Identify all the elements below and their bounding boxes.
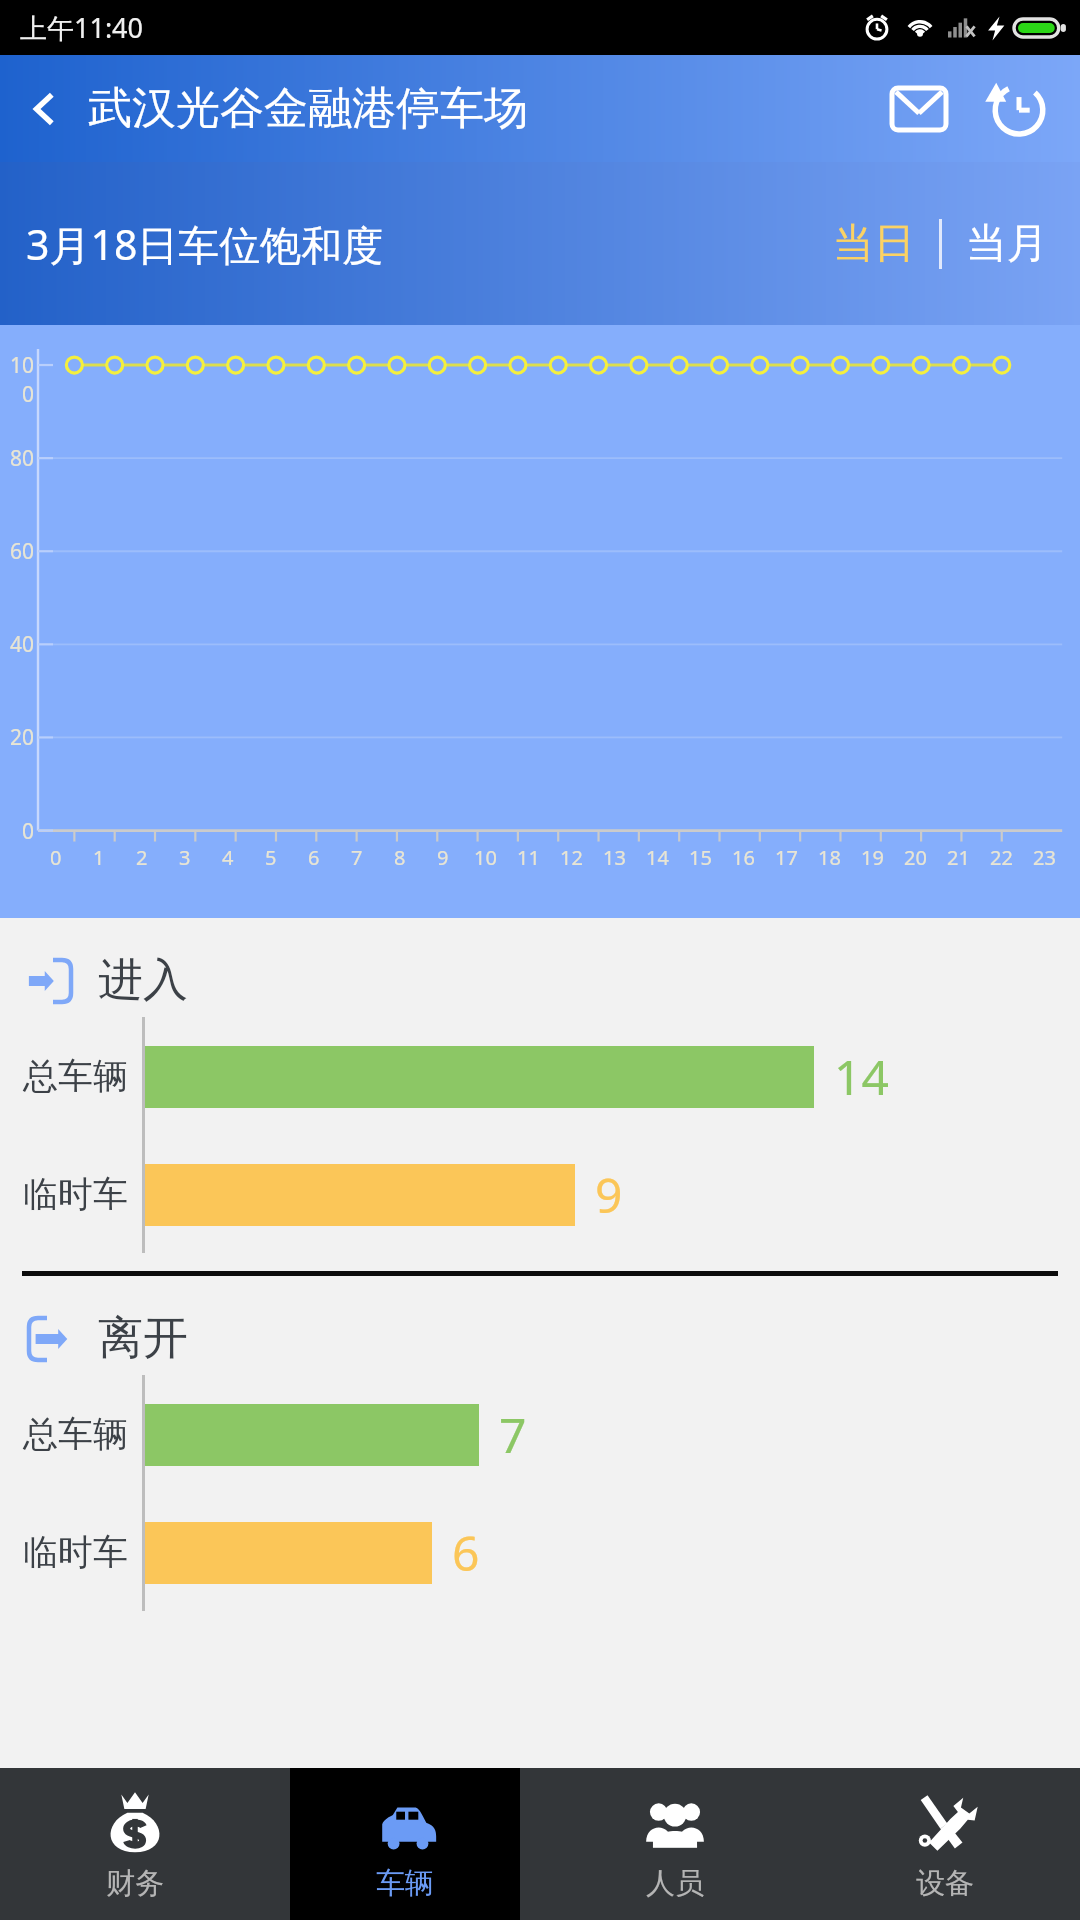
staticText: 14 <box>834 1044 889 1109</box>
staticText: 22 <box>990 844 1013 871</box>
staticText: 7 <box>499 1402 527 1467</box>
staticText: 18 <box>818 844 841 871</box>
staticText: 离开 <box>98 1310 188 1367</box>
staticText: 7 <box>351 844 363 871</box>
staticText: 60 <box>0 537 34 566</box>
staticText: 进入 <box>98 952 188 1009</box>
staticText: 临时车 <box>23 1172 128 1216</box>
staticText: 1 <box>93 844 105 871</box>
staticText: 9 <box>595 1162 623 1227</box>
staticText: 人员 <box>646 1865 704 1902</box>
staticText: 100 <box>0 351 34 409</box>
button[interactable]: 当月 <box>960 204 1054 284</box>
staticText: 临时车 <box>23 1530 128 1574</box>
staticText: 11 <box>517 844 540 871</box>
staticText: 20 <box>0 723 34 752</box>
button[interactable]: Back <box>14 78 76 140</box>
button[interactable]: 财务 <box>0 1768 270 1920</box>
staticText: 0 <box>50 844 62 871</box>
staticText: 23 <box>1033 844 1056 871</box>
staticText: 4 <box>222 844 234 871</box>
staticText: 3月18日车位饱和度 <box>26 216 384 272</box>
staticText: 14 <box>646 844 669 871</box>
staticText: 3 <box>179 844 191 871</box>
staticText: 2 <box>136 844 148 871</box>
staticText: 20 <box>904 844 927 871</box>
staticText: 13 <box>603 844 626 871</box>
staticText: 总车辆 <box>23 1412 128 1456</box>
staticText: 当月 <box>966 218 1048 270</box>
staticText: 武汉光谷金融港停车场 <box>88 81 528 136</box>
staticText: 总车辆 <box>23 1054 128 1098</box>
staticText: 6 <box>452 1520 480 1585</box>
staticText: 车辆 <box>376 1865 434 1902</box>
staticText: 80 <box>0 444 34 473</box>
button[interactable]: 车辆 <box>270 1768 540 1920</box>
staticText: 设备 <box>916 1865 974 1902</box>
staticText: 21 <box>947 844 970 871</box>
button[interactable]: Messages <box>880 70 958 148</box>
staticText: 10 <box>474 844 497 871</box>
staticText: 0 <box>0 817 34 846</box>
staticText: 上午11:40 <box>20 9 144 46</box>
staticText: 9 <box>437 844 449 871</box>
staticText: 19 <box>861 844 884 871</box>
staticText: 17 <box>775 844 798 871</box>
staticText: 5 <box>265 844 277 871</box>
button[interactable]: 人员 <box>540 1768 810 1920</box>
staticText: 当日 <box>833 218 915 270</box>
staticText: 财务 <box>106 1865 164 1902</box>
staticText: 6 <box>308 844 320 871</box>
button[interactable]: 当日 <box>827 204 921 284</box>
staticText: 16 <box>732 844 755 871</box>
button[interactable]: 设备 <box>810 1768 1080 1920</box>
button[interactable]: History <box>980 70 1058 148</box>
staticText: 8 <box>394 844 406 871</box>
staticText: 15 <box>689 844 712 871</box>
staticText: 12 <box>560 844 583 871</box>
staticText: 40 <box>0 630 34 659</box>
